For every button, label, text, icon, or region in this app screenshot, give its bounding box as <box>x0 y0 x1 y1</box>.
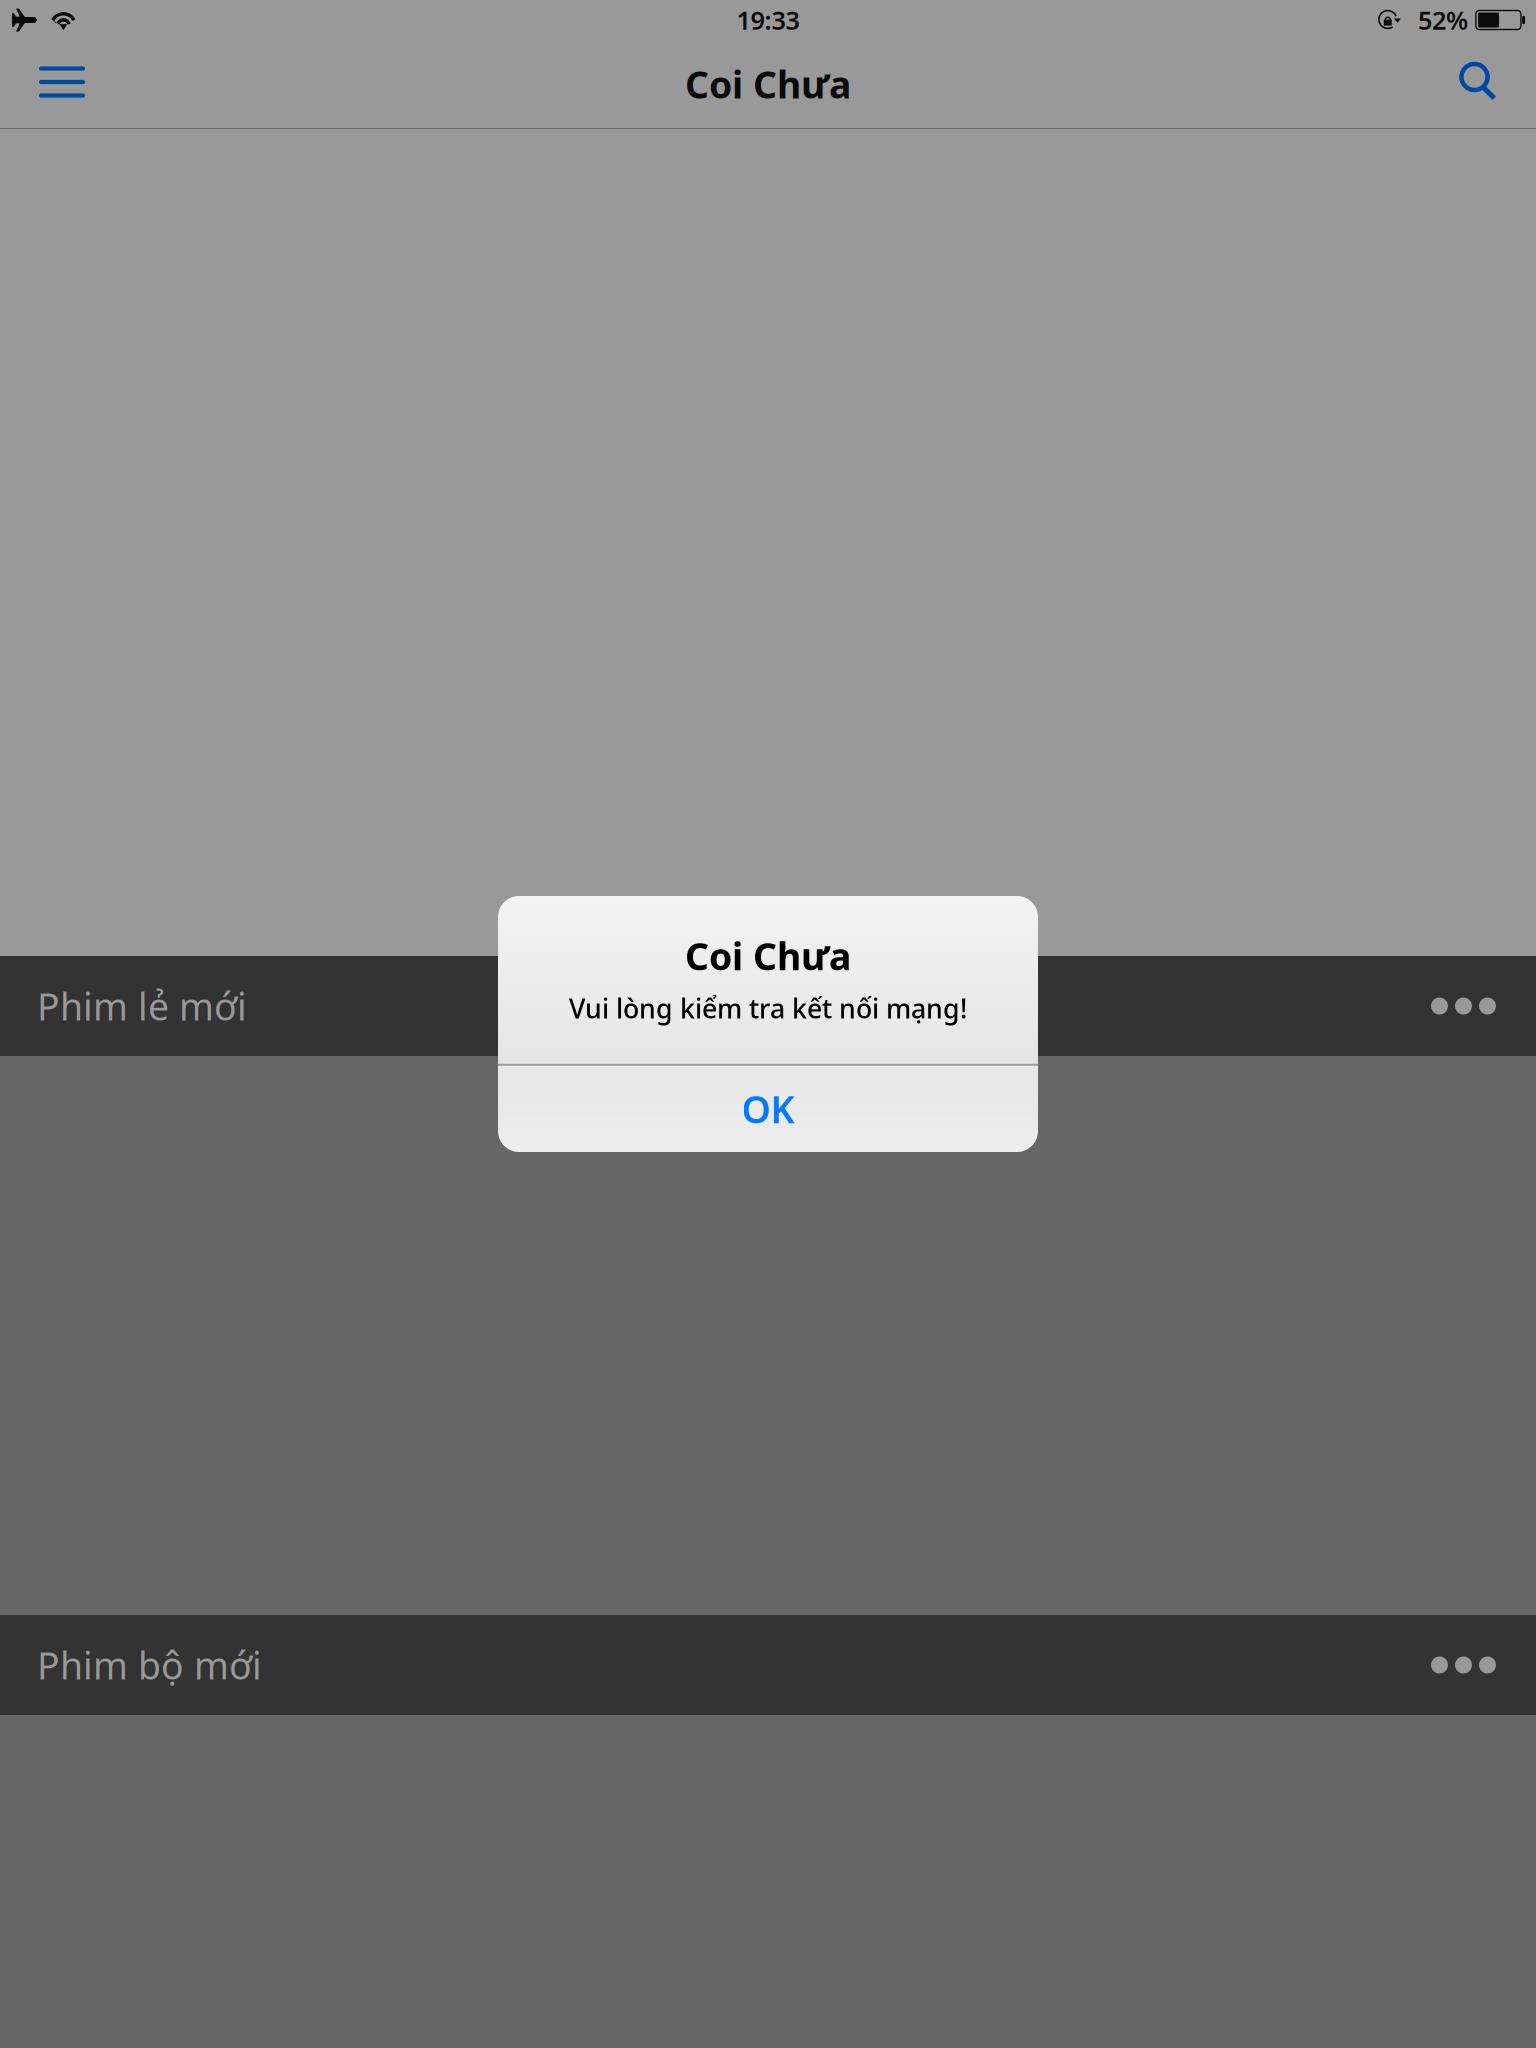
button[interactable]: Search <box>1443 40 1513 128</box>
button[interactable]: More <box>1411 1615 1516 1715</box>
button[interactable]: More <box>1411 956 1516 1056</box>
staticText: 52% <box>1418 3 1468 37</box>
staticText: Phim bộ mới <box>37 1640 262 1690</box>
button[interactable]: Menu <box>23 40 101 128</box>
staticText: OK <box>741 1084 794 1134</box>
button[interactable]: OK <box>498 1065 1038 1152</box>
staticText: 19:33 <box>736 3 799 37</box>
staticText: Phim lẻ mới <box>37 981 247 1031</box>
staticText: Coi Chưa <box>685 931 851 981</box>
staticText: Coi Chưa <box>685 59 851 109</box>
staticText: Vui lòng kiểm tra kết nối mạng! <box>569 990 967 1026</box>
